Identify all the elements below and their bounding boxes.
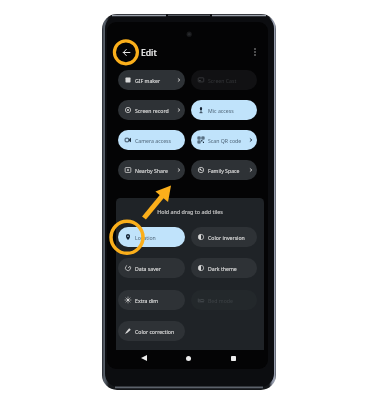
button[interactable]: Dark theme — [191, 258, 257, 278]
button[interactable]: Back — [118, 44, 135, 61]
button[interactable]: Scan QR code — [191, 130, 257, 150]
button[interactable]: Screen Cast — [191, 70, 257, 90]
staticText: Screen Cast — [208, 77, 237, 84]
button[interactable]: Data saver — [118, 258, 185, 278]
button[interactable]: Family Space — [191, 160, 257, 180]
button[interactable]: Recents — [226, 351, 240, 365]
staticText: Color inversion — [208, 234, 245, 241]
staticText: Camera access — [135, 137, 172, 144]
button[interactable]: Extra dim — [118, 290, 185, 310]
button[interactable]: Back — [137, 351, 151, 365]
button[interactable]: Home — [181, 351, 195, 365]
staticText: Family Space — [208, 167, 240, 174]
staticText: Scan QR code — [208, 137, 242, 144]
staticText: GIF maker — [135, 77, 161, 84]
button[interactable]: Screen record — [118, 100, 185, 120]
button[interactable]: Bed mode — [191, 290, 257, 310]
button[interactable]: Color inversion — [191, 227, 257, 247]
staticText: Location — [135, 234, 156, 241]
staticText: Dark theme — [208, 265, 237, 272]
staticText: Screen record — [135, 107, 169, 114]
button[interactable]: Color correction — [118, 321, 185, 341]
staticText: Edit — [141, 47, 157, 59]
button[interactable]: Camera access — [118, 130, 185, 150]
staticText: Data saver — [135, 265, 161, 272]
staticText: Nearby Share — [135, 167, 168, 174]
staticText: Color correction — [135, 328, 175, 335]
staticText: Mic access — [208, 107, 234, 114]
staticText: Bed mode — [208, 297, 233, 304]
button[interactable]: More options — [248, 45, 262, 59]
button[interactable]: Mic access — [191, 100, 257, 120]
staticText: Extra dim — [135, 297, 159, 304]
staticText: Hold and drag to add tiles — [116, 208, 264, 215]
button[interactable]: Nearby Share — [118, 160, 185, 180]
button[interactable]: GIF maker — [118, 70, 185, 90]
button[interactable]: Location — [118, 227, 185, 247]
